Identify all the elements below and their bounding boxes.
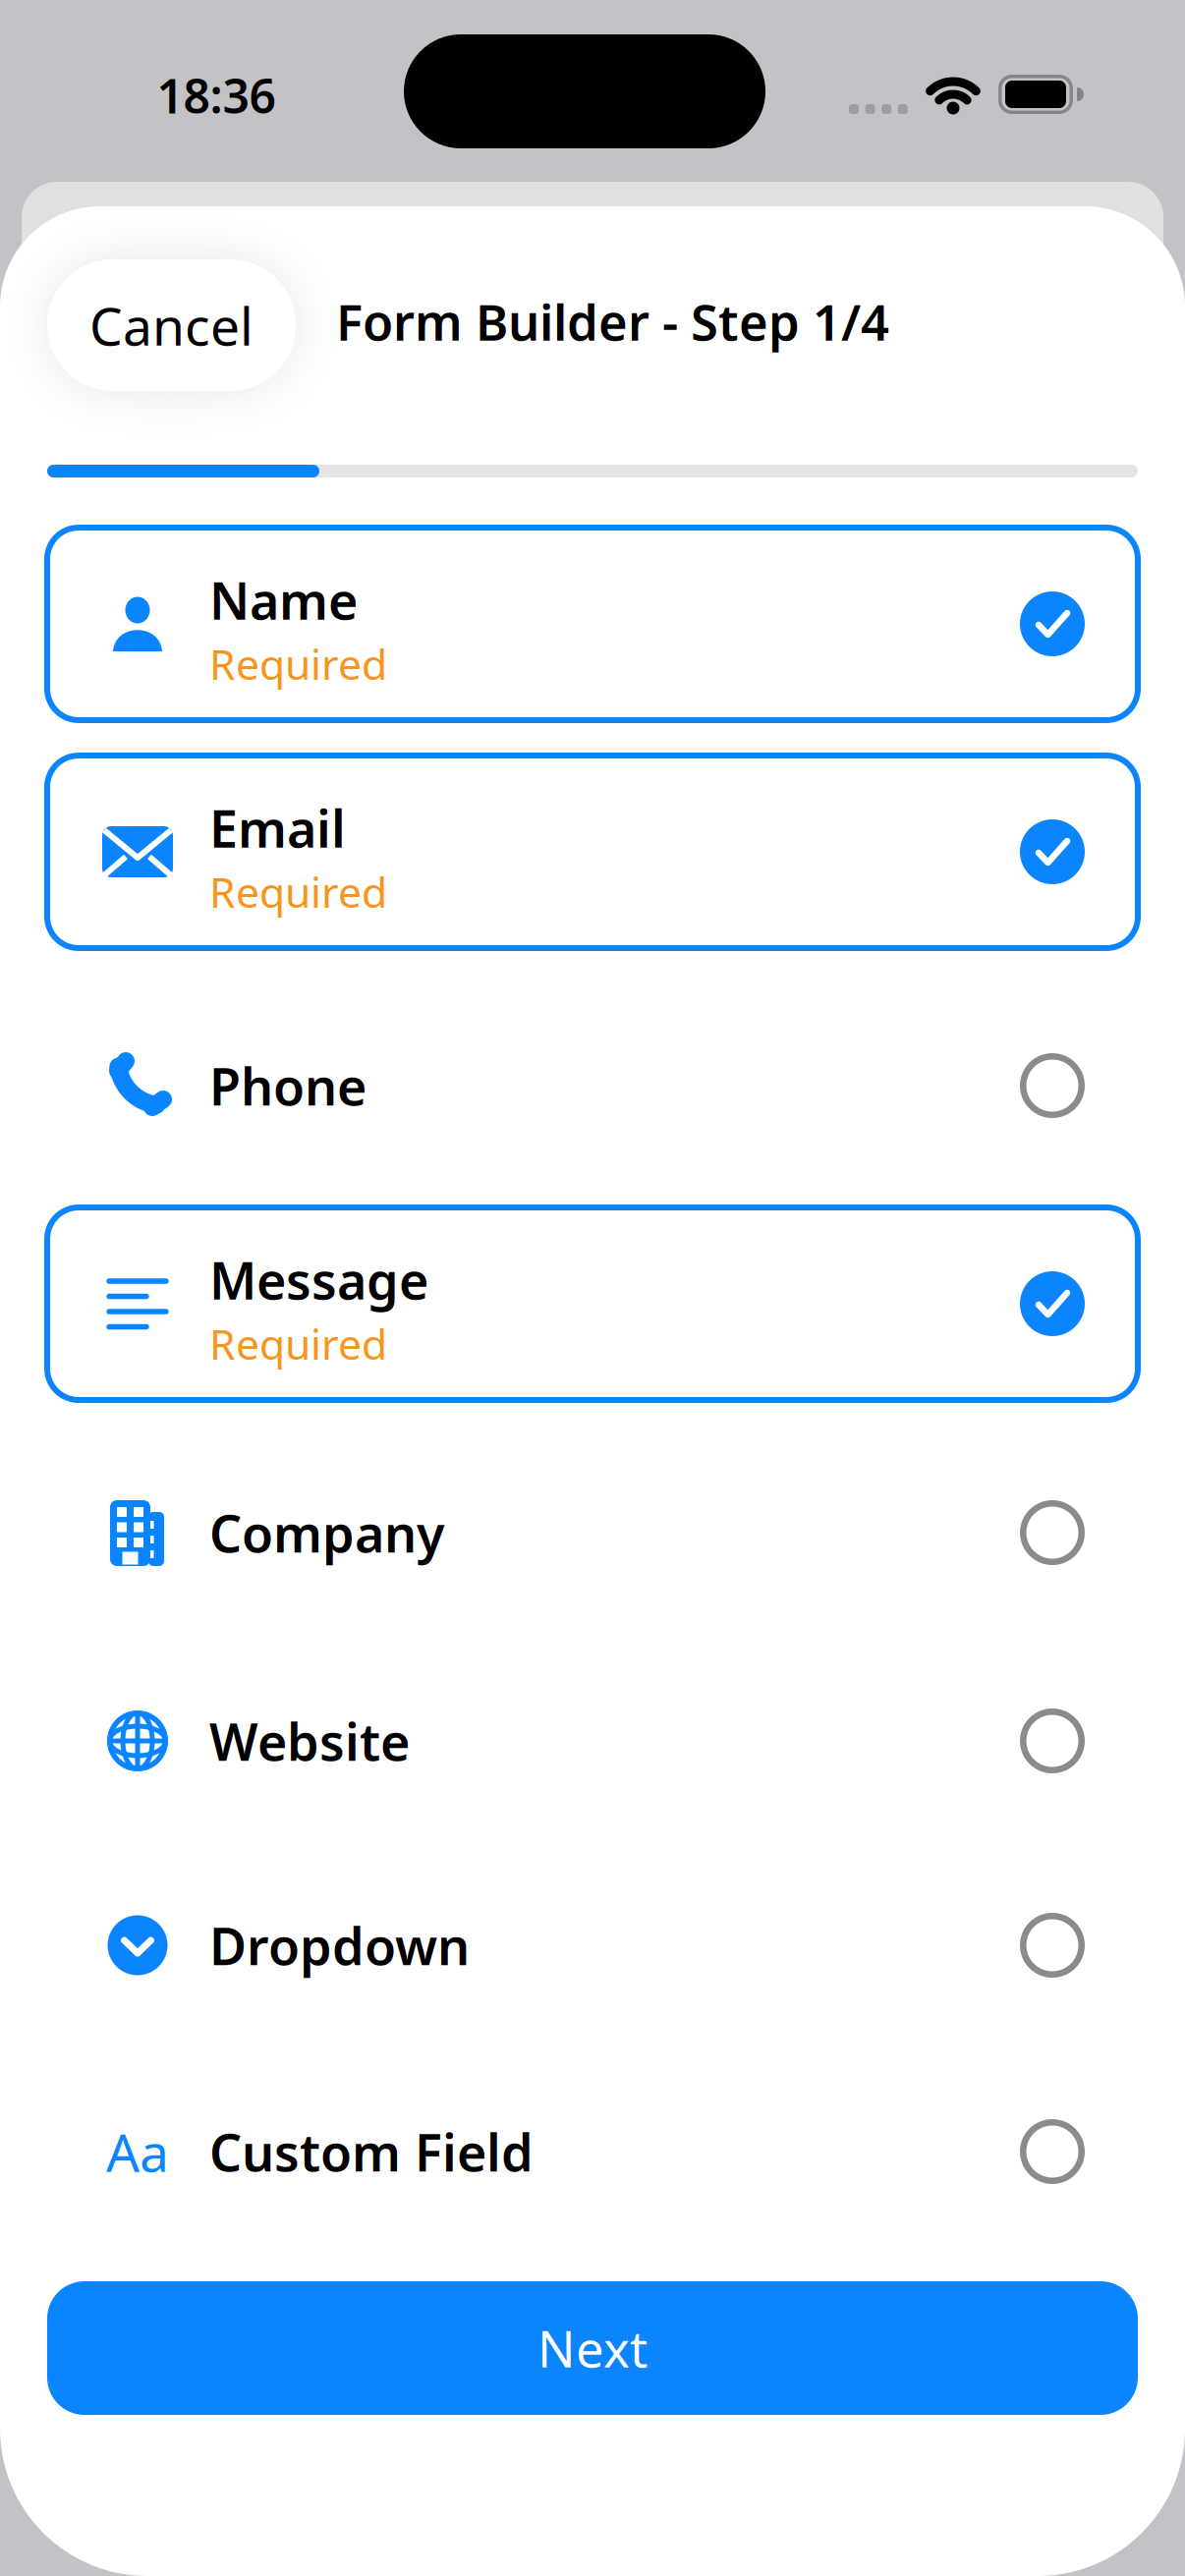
staticText: Name [209, 566, 358, 634]
button[interactable]: Email [44, 751, 1141, 953]
button[interactable]: Aa [44, 2050, 1141, 2253]
button[interactable]: Name [44, 523, 1141, 725]
staticText: Website [209, 1707, 410, 1775]
staticText: Message [209, 1246, 428, 1314]
staticText: Cancel [89, 290, 254, 360]
button[interactable]: Company [44, 1431, 1141, 1634]
button[interactable]: Dropdown [44, 1844, 1141, 2046]
button[interactable]: Next [47, 2281, 1138, 2415]
button[interactable]: Website [44, 1640, 1141, 1842]
staticText: Company [209, 1499, 444, 1567]
button[interactable]: Phone [44, 984, 1141, 1187]
staticText: Required [209, 1316, 387, 1371]
staticText: 18:36 [157, 64, 276, 127]
staticText: Phone [209, 1052, 367, 1120]
staticText: Aa [106, 2117, 169, 2186]
button[interactable]: Message [44, 1203, 1141, 1405]
staticText: Required [209, 636, 387, 692]
staticText: Next [537, 2315, 648, 2381]
staticText: Dropdown [209, 1911, 470, 1979]
staticText: Email [209, 794, 346, 862]
button[interactable]: Cancel [47, 259, 296, 391]
staticText: Custom Field [209, 2118, 534, 2186]
staticText: Form Builder - Step 1/4 [336, 288, 889, 354]
staticText: Required [209, 864, 387, 919]
